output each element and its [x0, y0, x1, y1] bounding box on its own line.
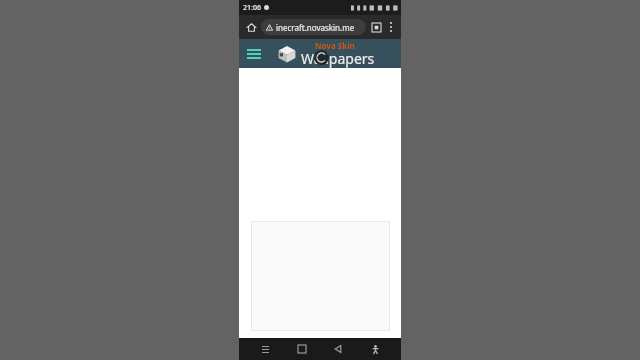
button[interactable]: Back — [328, 339, 348, 359]
button[interactable]: Home — [292, 339, 312, 359]
button[interactable]: Home — [243, 19, 259, 35]
button[interactable] — [251, 221, 390, 331]
staticText: inecraft.novaskin.me — [276, 22, 355, 33]
staticText: Nova Skin — [315, 40, 355, 51]
button[interactable]: Accessibility — [365, 339, 385, 359]
staticText: 21:06 — [243, 3, 261, 13]
button[interactable]: Tabs — [369, 20, 383, 34]
button[interactable]: Recent apps — [255, 339, 275, 359]
button[interactable]: More options — [385, 21, 397, 33]
staticText: Wallpapers — [301, 49, 375, 68]
button[interactable]: inecraft.novaskin.me — [261, 19, 366, 35]
button[interactable]: Menu — [244, 44, 264, 64]
